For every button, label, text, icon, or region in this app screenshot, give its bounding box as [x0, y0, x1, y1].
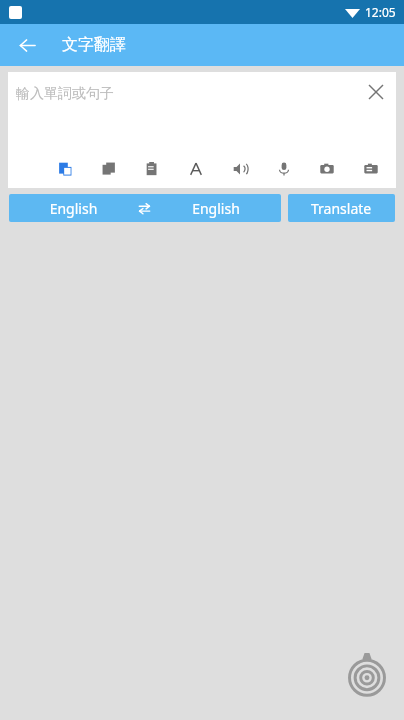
button[interactable]: Voice input [271, 156, 297, 182]
button[interactable]: Back [10, 28, 44, 62]
button[interactable]: Assistive touch [344, 652, 390, 698]
button[interactable]: English [9, 194, 281, 222]
button[interactable]: Clear [360, 76, 392, 108]
button[interactable]: Text size [183, 156, 209, 182]
staticText: English [151, 199, 281, 218]
staticText: 輸入單詞或句子 [16, 85, 114, 103]
button[interactable]: Camera [314, 156, 340, 182]
staticText: English [9, 199, 138, 218]
button[interactable]: Paste [139, 156, 165, 182]
button[interactable]: Switch camera [358, 156, 384, 182]
staticText: 文字翻譯 [62, 35, 126, 55]
staticText: 12:05 [365, 4, 396, 20]
button[interactable]: Copy [96, 156, 122, 182]
staticText: Translate [311, 199, 372, 218]
button[interactable]: Translate document [52, 156, 78, 182]
button[interactable]: Translate [288, 194, 395, 222]
button[interactable]: Speak [227, 156, 253, 182]
